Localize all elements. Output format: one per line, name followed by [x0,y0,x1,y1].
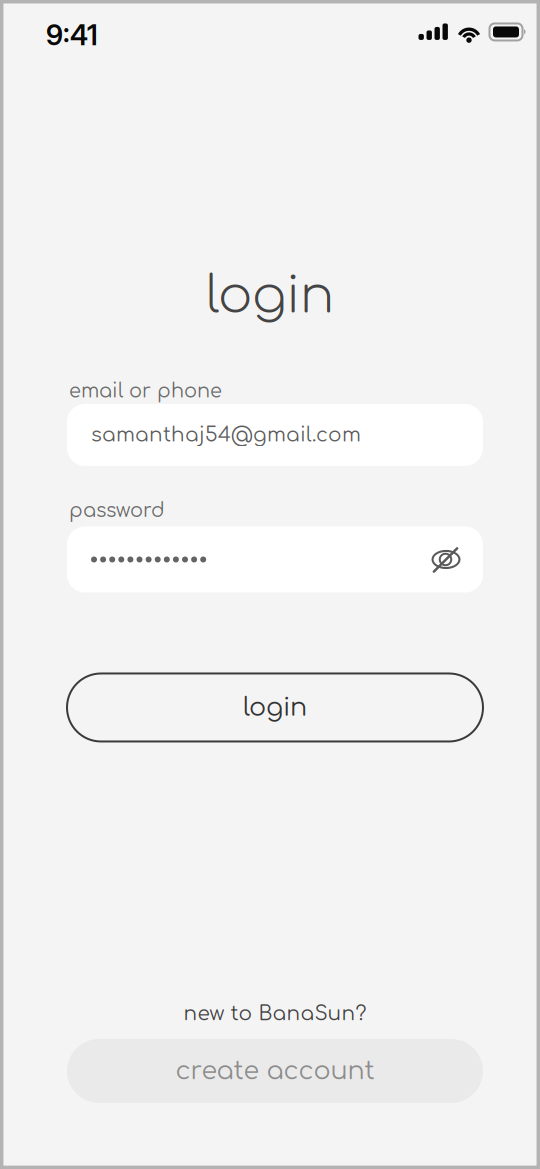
button[interactable]: Show password [429,543,463,575]
staticText: new to BanaSun? [183,1003,366,1025]
button[interactable]: create account [67,1039,483,1103]
staticText: samanthaj54@gmail.com [91,424,361,446]
staticText: password [69,500,165,521]
staticText: login [206,268,334,324]
staticText: email or phone [69,380,222,402]
staticText: create account [175,1057,374,1085]
staticText: login [243,693,307,722]
staticText: 9:41 [46,18,98,52]
button[interactable]: login [67,673,483,741]
